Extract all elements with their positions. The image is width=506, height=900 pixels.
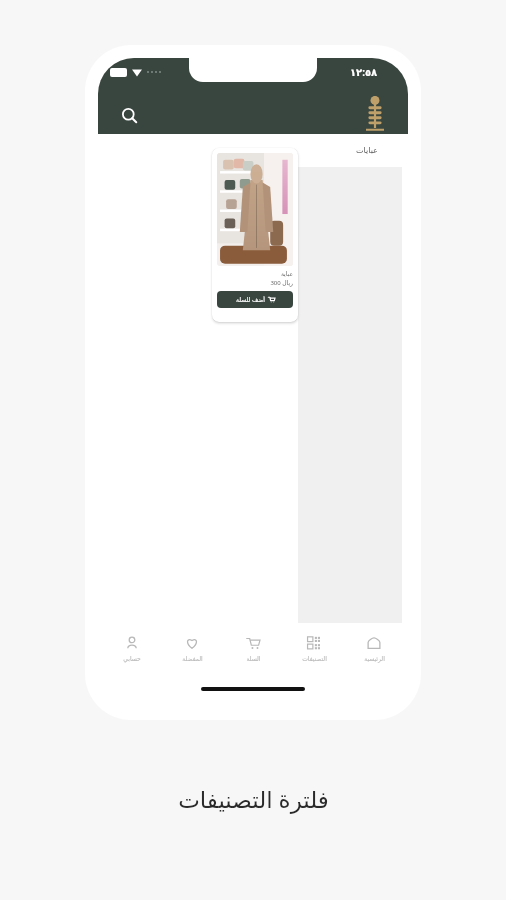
staticText: فلترة التصنيفات (178, 783, 329, 814)
button[interactable]: أضف للسلة (217, 291, 293, 308)
staticText: التصنيفات (302, 655, 327, 662)
button[interactable]: حسابي (105, 631, 159, 666)
staticText: عباية (217, 270, 293, 277)
button[interactable]: السلة (226, 631, 280, 666)
staticText: عبايات (356, 146, 378, 155)
staticText: 300 ريال (217, 279, 293, 287)
staticText: أضف للسلة (236, 296, 265, 304)
staticText: السلة (246, 655, 261, 662)
button[interactable]: المفضلة (165, 631, 219, 666)
staticText: حسابي (123, 655, 141, 662)
button[interactable]: عباية (212, 148, 298, 322)
staticText: ١٢:٥٨ (350, 65, 378, 79)
button[interactable]: الرئيسية (347, 631, 401, 666)
button[interactable]: Logo (360, 92, 390, 134)
button[interactable]: عبايات (348, 142, 386, 159)
button[interactable]: Search (114, 100, 144, 130)
staticText: الرئيسية (364, 655, 385, 662)
button[interactable]: التصنيفات (287, 631, 341, 666)
staticText: المفضلة (182, 655, 203, 662)
